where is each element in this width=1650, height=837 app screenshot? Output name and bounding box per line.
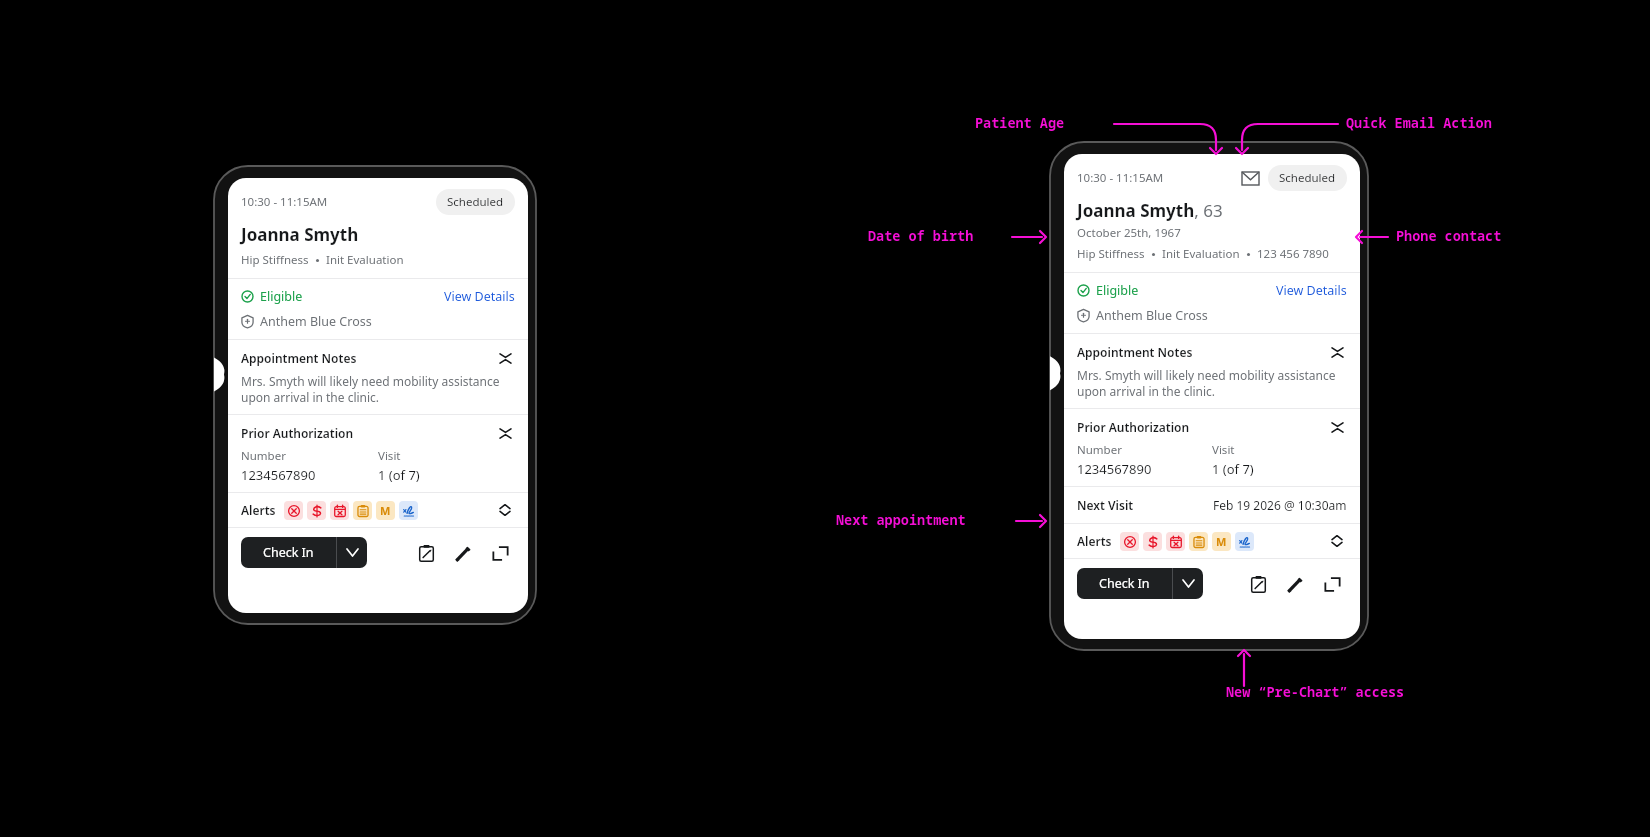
staticText: Number	[1077, 442, 1122, 458]
button[interactable]: Scheduled	[436, 189, 515, 215]
staticText: Check In	[1099, 575, 1150, 592]
staticText: Joanna Smyth, 63	[1077, 199, 1223, 222]
staticText: Joanna Smyth	[241, 223, 359, 246]
staticText: Anthem Blue Cross	[1096, 307, 1208, 324]
button[interactable]: Balance alert	[1143, 532, 1162, 551]
button[interactable]: Expand	[487, 540, 513, 566]
staticText: Next Visit	[1077, 497, 1134, 513]
button[interactable]: Scheduled	[1268, 165, 1347, 191]
button[interactable]: Cancelled visit alert	[330, 501, 349, 520]
staticText: 1234567890	[241, 466, 316, 484]
button[interactable]: Collapse section	[1327, 342, 1347, 362]
staticText: Appointment Notes	[241, 350, 357, 366]
button[interactable]: View Details	[1276, 282, 1347, 299]
staticText: New “Pre-Chart” access	[1226, 683, 1405, 701]
staticText: View Details	[1276, 282, 1347, 299]
staticText: Init Evaluation	[326, 252, 404, 268]
button[interactable]: Forms alert	[353, 501, 372, 520]
button[interactable]: Alerts	[228, 493, 528, 527]
staticText: Feb 19 2026 @ 10:30am	[1213, 497, 1347, 513]
button[interactable]: Quick email	[1238, 166, 1262, 190]
staticText: Scheduled	[447, 194, 504, 210]
staticText: Mrs. Smyth will likely need mobility ass…	[1077, 367, 1347, 400]
button[interactable]: Check In	[1077, 568, 1172, 599]
staticText: Phone contact	[1396, 227, 1502, 245]
staticText: M	[1216, 534, 1227, 549]
staticText: Next appointment	[836, 511, 966, 529]
staticText: 1 (of 7)	[378, 466, 420, 484]
staticText: 123 456 7890	[1257, 246, 1329, 262]
button[interactable]: View Details	[444, 288, 515, 305]
button[interactable]: Forms alert	[1189, 532, 1208, 551]
button[interactable]: Edit	[1282, 571, 1308, 597]
staticText: Mrs. Smyth will likely need mobility ass…	[241, 373, 515, 406]
staticText: Hip Stiffness	[241, 252, 309, 268]
staticText: Number	[241, 448, 286, 464]
button[interactable]: Alerts	[1064, 524, 1360, 558]
button[interactable]: Pre-chart	[413, 540, 439, 566]
staticText: View Details	[444, 288, 515, 305]
staticText: Hip Stiffness	[1077, 246, 1145, 262]
button[interactable]: Expand alerts	[495, 500, 515, 520]
button[interactable]: Expand	[1319, 571, 1345, 597]
staticText: Eligible	[1096, 282, 1139, 299]
staticText: Eligible	[260, 288, 303, 305]
button[interactable]: Balance alert	[307, 501, 326, 520]
staticText: Anthem Blue Cross	[260, 313, 372, 330]
button[interactable]: Medication alert	[376, 501, 395, 520]
button[interactable]: Blocked alert	[284, 501, 303, 520]
button[interactable]: Signature required	[399, 501, 418, 520]
button[interactable]: Next Visit	[1064, 487, 1360, 523]
staticText: 1234567890	[1077, 460, 1152, 478]
button[interactable]: More check-in options	[1173, 568, 1203, 599]
button[interactable]: Signature required	[1235, 532, 1254, 551]
staticText: Quick Email Action	[1346, 114, 1492, 132]
staticText: Alerts	[241, 502, 276, 518]
staticText: 10:30 - 11:15AM	[1077, 170, 1164, 186]
staticText: Init Evaluation	[1162, 246, 1240, 262]
button[interactable]: Expand alerts	[1327, 531, 1347, 551]
staticText: Appointment Notes	[1077, 344, 1193, 360]
button[interactable]: Collapse section	[495, 423, 515, 443]
staticText: 10:30 - 11:15AM	[241, 194, 328, 210]
button[interactable]: Check In	[241, 537, 336, 568]
staticText: Scheduled	[1279, 170, 1336, 186]
staticText: Check In	[263, 544, 314, 561]
button[interactable]: Edit	[450, 540, 476, 566]
button[interactable]: More check-in options	[337, 537, 367, 568]
staticText: Patient Age	[975, 114, 1065, 132]
staticText: 1 (of 7)	[1212, 460, 1254, 478]
staticText: Prior Authorization	[1077, 419, 1190, 435]
staticText: Alerts	[1077, 533, 1112, 549]
staticText: Date of birth	[868, 227, 974, 245]
staticText: M	[380, 503, 391, 518]
button[interactable]: Cancelled visit alert	[1166, 532, 1185, 551]
staticText: October 25th, 1967	[1077, 225, 1181, 241]
button[interactable]: Collapse section	[495, 348, 515, 368]
button[interactable]: Pre-chart	[1245, 571, 1271, 597]
button[interactable]: Medication alert	[1212, 532, 1231, 551]
button[interactable]: Collapse section	[1327, 417, 1347, 437]
button[interactable]: Blocked alert	[1120, 532, 1139, 551]
staticText: Visit	[378, 448, 401, 464]
staticText: Visit	[1212, 442, 1235, 458]
staticText: Prior Authorization	[241, 425, 354, 441]
